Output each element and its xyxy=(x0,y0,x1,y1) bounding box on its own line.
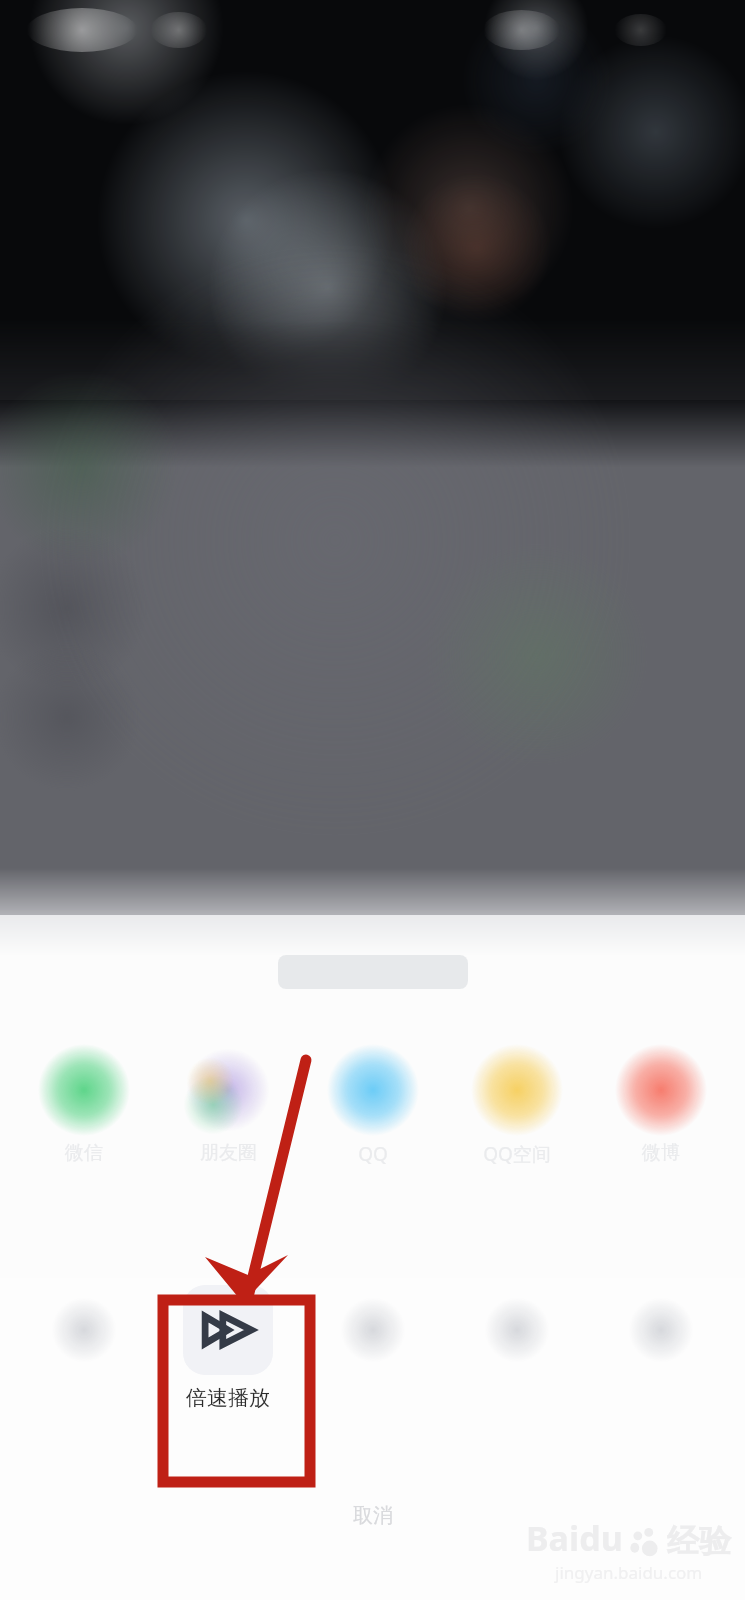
button[interactable]: 朋友圈 xyxy=(168,1045,288,1165)
staticText: 经验 xyxy=(667,1521,731,1561)
button[interactable]: QQ空间 xyxy=(457,1045,577,1167)
button[interactable] xyxy=(601,1285,721,1407)
button[interactable]: 微博 xyxy=(601,1045,721,1165)
button[interactable]: 微信 xyxy=(24,1045,144,1165)
staticText: 取消 xyxy=(353,1503,393,1528)
button[interactable] xyxy=(24,1285,144,1407)
button[interactable] xyxy=(457,1285,577,1407)
staticText: QQ xyxy=(358,1141,388,1167)
staticText: 朋友圈 xyxy=(200,1141,257,1165)
button[interactable] xyxy=(313,1285,433,1407)
staticText: QQ空间 xyxy=(483,1141,551,1167)
staticText: 倍速播放 xyxy=(186,1385,270,1411)
button[interactable]: 取消 xyxy=(313,1495,433,1535)
staticText: jingyan.baidu.com xyxy=(555,1561,703,1584)
staticText: 微博 xyxy=(642,1141,680,1165)
button[interactable]: QQ xyxy=(313,1045,433,1167)
staticText: Baidu xyxy=(526,1515,623,1561)
staticText: 微信 xyxy=(65,1141,103,1165)
button[interactable]: 倍速播放 xyxy=(168,1285,288,1411)
